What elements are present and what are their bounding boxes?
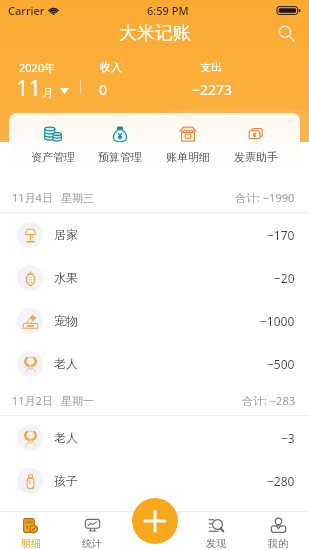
staticText: 水果 [54,270,78,285]
staticText: 明细 [21,537,41,550]
staticText: 资产管理 [31,150,75,164]
button[interactable]: 资产管理 [19,113,86,172]
button[interactable]: 我的 [247,511,309,550]
staticText: 我的 [268,537,288,550]
staticText: 宠物 [54,313,78,328]
staticText: 0 [99,80,108,99]
staticText: −280 [267,473,295,489]
staticText: 统计 [82,537,102,550]
staticText: 发现 [206,537,226,550]
staticText: 星期三 [61,191,94,205]
staticText: 2020年 [19,60,56,75]
staticText: −2273 [192,80,233,99]
button[interactable]: Search [273,20,299,46]
button[interactable]: 孩子 [0,459,309,502]
staticText: 居家 [54,227,78,242]
staticText: −1000 [260,313,295,329]
staticText: 合计: −283 [242,393,295,408]
button[interactable]: 老人 [0,416,309,459]
staticText: 发票助手 [234,150,278,164]
staticText: 支出 [200,60,222,74]
staticText: −500 [267,356,295,372]
staticText: 合计: −1990 [235,190,295,205]
button[interactable]: 预算管理 [86,113,154,172]
staticText: 11月4日 [12,190,53,205]
staticText: 收入 [100,60,122,74]
staticText: 星期一 [61,394,94,408]
button[interactable]: 发现 [185,511,247,550]
staticText: −170 [267,227,295,243]
staticText: 11月2日 [12,393,53,408]
button[interactable]: 居家 [0,213,309,256]
staticText: 孩子 [54,473,78,488]
staticText: −20 [274,270,295,286]
staticText: 账单明细 [166,150,210,164]
button[interactable]: 老人 [0,342,309,385]
staticText: 6:59 PM [147,3,189,18]
button[interactable]: 明细 [0,511,61,550]
button[interactable]: Add [132,498,178,544]
staticText: 月 [42,86,53,100]
staticText: 预算管理 [98,150,142,164]
button[interactable]: 发票助手 [222,113,290,172]
button[interactable]: 账单明细 [154,113,222,172]
staticText: −3 [281,430,295,446]
button[interactable]: 宠物 [0,299,309,342]
staticText: Carrier [8,3,45,18]
button[interactable]: 统计 [61,511,123,550]
staticText: 老人 [54,430,78,445]
staticText: 大米记账 [119,22,191,45]
staticText: 老人 [54,356,78,371]
button[interactable]: 水果 [0,256,309,299]
staticText: 11 [16,72,42,102]
